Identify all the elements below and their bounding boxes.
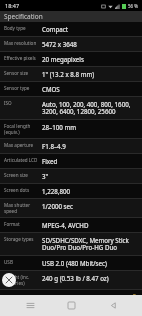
staticText: Max shutter speed <box>4 202 38 214</box>
staticText: Sensor type <box>4 85 38 91</box>
staticText: Storage types <box>4 236 38 242</box>
staticText: 20 megapixels <box>42 55 84 63</box>
staticText: 240 g (0.53 lb / 8.47 oz) <box>42 274 109 282</box>
staticText: Max aperture <box>4 142 38 148</box>
button[interactable]: Format <box>0 218 142 233</box>
button[interactable]: Screen size <box>0 169 142 184</box>
staticText: USB 2.0 (480 Mbit/sec) <box>42 259 107 267</box>
button[interactable]: Articulated LCD <box>0 154 142 169</box>
staticText: Weight (inc. batteries) <box>4 274 38 286</box>
staticText: 56 % <box>128 3 139 9</box>
staticText: Body type <box>4 25 38 31</box>
staticText: 28–100 mm <box>42 123 76 131</box>
button[interactable]: Sensor type <box>0 82 142 97</box>
button[interactable]: USB <box>0 256 142 271</box>
button[interactable]: Max resolution <box>0 37 142 52</box>
button[interactable]: Max aperture <box>0 139 142 154</box>
button[interactable]: Body type <box>0 22 142 37</box>
staticText: Articulated LCD <box>4 157 38 163</box>
staticText: 18:47 <box>5 2 20 9</box>
button[interactable]: Weight (inc. batteries) <box>0 271 142 290</box>
staticText: 1/2000 sec <box>42 202 74 210</box>
button[interactable]: Focal length (equiv.) <box>0 120 142 139</box>
staticText: Screen size <box>4 172 38 178</box>
button[interactable]: Back <box>101 295 125 316</box>
button[interactable]: Dimensions <box>0 290 142 295</box>
staticText: Auto, 100, 200, 400, 800, 1600, 3200, 64… <box>42 100 138 116</box>
staticText: CMOS <box>42 85 60 93</box>
staticText: Specification <box>4 12 43 21</box>
staticText: 1" (13.2 x 8.8 mm) <box>42 70 95 78</box>
staticText: 1,228,800 <box>42 187 71 195</box>
staticText: Compact <box>42 25 68 33</box>
button[interactable]: Home <box>59 295 83 316</box>
button[interactable]: Screen dots <box>0 184 142 199</box>
button[interactable]: ISO <box>0 97 142 120</box>
staticText: 3" <box>42 172 49 180</box>
staticText: F1.8–4.9 <box>42 142 66 150</box>
staticText: Sensor size <box>4 70 38 76</box>
staticText: 5472 x 3648 <box>42 40 77 48</box>
button[interactable]: Specification <box>0 11 142 22</box>
staticText: ISO <box>4 100 38 106</box>
staticText: Fixed <box>42 157 58 165</box>
staticText: Effective pixels <box>4 55 38 61</box>
button[interactable]: Max shutter speed <box>0 199 142 218</box>
staticText: Format <box>4 221 38 227</box>
staticText: Focal length (equiv.) <box>4 123 38 135</box>
button[interactable]: Sensor size <box>0 67 142 82</box>
staticText: SD/SDHC/SDXC, Memory Stick Duo/Pro Duo/P… <box>42 236 138 252</box>
button[interactable]: Recents <box>18 295 42 316</box>
button[interactable]: Close <box>2 273 16 287</box>
button[interactable]: Effective pixels <box>0 52 142 67</box>
staticText: Max resolution <box>4 40 38 46</box>
staticText: Screen dots <box>4 187 38 193</box>
button[interactable]: Storage types <box>0 233 142 256</box>
staticText: USB <box>4 259 38 265</box>
staticText: MPEG-4, AVCHD <box>42 221 89 229</box>
